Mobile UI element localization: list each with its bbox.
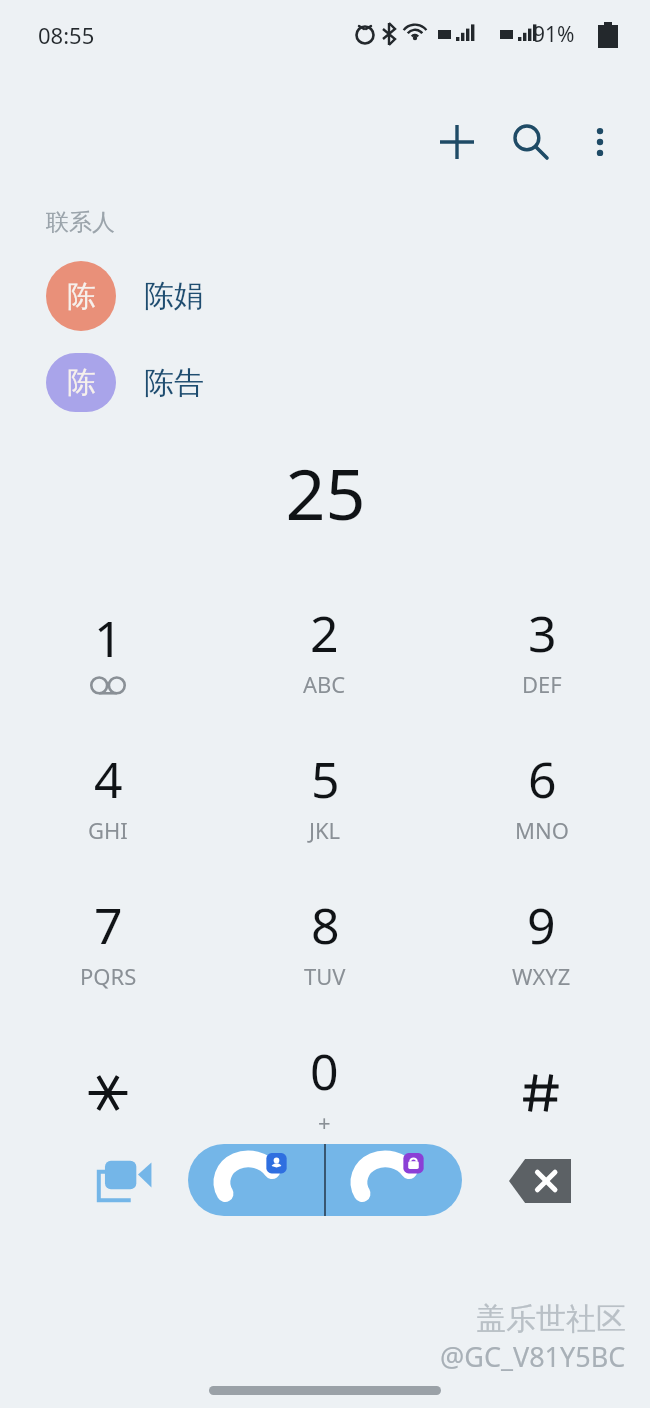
button[interactable]: 6 [433,722,650,868]
button[interactable] [0,1014,216,1160]
button[interactable]: 4 [0,722,216,868]
staticText: WXYZ [512,961,571,991]
staticText: MNO [515,815,569,845]
staticText: 陈告 [144,364,204,402]
staticText: 陈娟 [144,277,204,315]
staticText: 0 [310,1037,339,1105]
button[interactable]: 2 [216,576,433,722]
button[interactable]: 0 [216,1014,433,1160]
button[interactable]: Call with SIM 1 [188,1144,325,1216]
staticText: 4 [94,745,123,813]
staticText: 8 [311,891,340,959]
button[interactable]: Search [494,105,568,179]
staticText: PQRS [80,961,137,991]
staticText: ABC [303,669,346,699]
staticText: 25 [285,445,366,540]
button[interactable]: Video call [78,1136,170,1226]
staticText: 6 [528,745,557,813]
button[interactable]: 3 [433,576,650,722]
staticText: 7 [94,891,123,959]
button[interactable]: 1 [0,576,216,722]
button[interactable]: 5 [216,722,433,868]
staticText: 08:55 [38,20,95,50]
button[interactable]: Delete [492,1136,588,1226]
staticText: 3 [528,599,557,667]
button[interactable]: 9 [433,868,650,1014]
button[interactable]: Add contact [420,105,494,179]
staticText: 91% [533,20,575,49]
staticText: JKL [309,815,341,845]
staticText: @GC_V81Y5BC [440,1338,626,1375]
staticText: 陈 [67,278,96,315]
staticText: GHI [88,815,128,845]
button[interactable]: 陈 [0,259,650,333]
button[interactable]: 8 [216,868,433,1014]
staticText: DEF [522,669,562,699]
button[interactable]: 7 [0,868,216,1014]
button[interactable] [433,1014,650,1160]
staticText: + [318,1107,331,1137]
button[interactable]: 陈 [0,353,650,412]
staticText: TUV [304,961,346,991]
staticText: 1 [94,604,123,672]
staticText: 盖乐世社区 [476,1300,626,1338]
staticText: 9 [527,891,556,959]
staticText: 联系人 [46,208,115,237]
staticText: 5 [311,745,340,813]
staticText: 2 [310,599,339,667]
button[interactable]: Call with SIM 2 [325,1144,462,1216]
staticText: 陈 [67,364,96,401]
button[interactable]: More options [568,110,632,174]
